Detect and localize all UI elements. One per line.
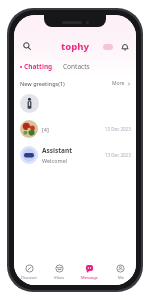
button[interactable]: New greetings(1): [14, 77, 136, 90]
staticText: 13 Dec 2023: [105, 152, 131, 158]
button[interactable]: Message: [74, 259, 105, 285]
button[interactable]: Vibes: [44, 259, 74, 285]
staticText: 13 Dec 2023: [105, 126, 131, 132]
staticText: New greetings(1): [20, 80, 65, 87]
staticText: Contacts: [63, 62, 90, 71]
staticText: tophy: [61, 40, 90, 53]
staticText: Welcome!: [42, 157, 68, 164]
button[interactable]: [14, 90, 136, 116]
staticText: Vibes: [54, 275, 65, 280]
button[interactable]: Contacts: [63, 62, 90, 71]
staticText: Me: [118, 275, 124, 280]
staticText: Chatting: [24, 62, 53, 71]
button[interactable]: Search: [20, 39, 34, 53]
button[interactable]: Chatting: [20, 62, 53, 71]
button[interactable]: tophy: [61, 40, 90, 53]
button[interactable]: Assistant: [14, 142, 136, 168]
staticText: Message: [81, 275, 98, 280]
button[interactable]: Notifications: [118, 40, 131, 53]
staticText: Assistant: [42, 146, 72, 155]
button[interactable]: Discover: [14, 259, 44, 285]
staticText: [4]: [42, 126, 49, 133]
button[interactable]: Coins: [103, 44, 113, 50]
button[interactable]: [4]: [14, 116, 136, 142]
staticText: Discover: [21, 275, 38, 280]
staticText: More: [112, 80, 125, 87]
button[interactable]: Me: [105, 259, 136, 285]
